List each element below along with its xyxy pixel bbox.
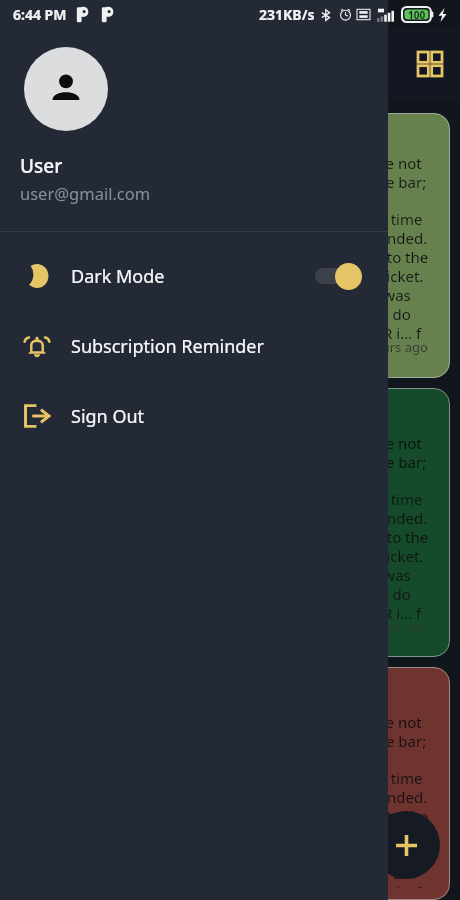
button[interactable]: This is a sample not note with a side ba… <box>10 113 225 378</box>
staticText: 100 <box>408 8 426 22</box>
staticText: It was over the time the season is ended… <box>283 489 429 624</box>
staticText: 3 hours ago <box>355 338 428 356</box>
staticText: 6:44 PM <box>13 5 67 24</box>
button[interactable]: Grid view <box>406 40 454 88</box>
staticText: Personal <box>58 193 104 208</box>
staticText: 231KB/s <box>259 5 315 24</box>
staticText: Subscription Reminder <box>71 334 264 359</box>
staticText: User <box>20 153 63 179</box>
button[interactable]: This is a sample not note with a side ba… <box>235 388 450 657</box>
staticText: It was over the time the season is ended… <box>283 768 429 888</box>
staticText: This is a sample not note with a side ba… <box>283 433 427 473</box>
button[interactable]: This is a sample not note with a side ba… <box>10 388 225 657</box>
staticText: This is a sample not note with a side ba… <box>283 712 427 752</box>
button[interactable]: Add note <box>372 811 440 879</box>
staticText: 3 hours ago <box>130 338 203 356</box>
staticText: Sign Out <box>71 404 145 429</box>
button[interactable]: This is a sample not note with a side ba… <box>235 667 450 900</box>
staticText: This is a sample not note with a side ba… <box>58 153 202 193</box>
staticText: It was over the time the season is ended… <box>283 209 429 344</box>
staticText: 2 days ago <box>362 618 428 636</box>
staticText: It was over the time the season is ended… <box>58 209 204 344</box>
staticText: Dark Mode <box>71 264 165 289</box>
button[interactable]: This is a sample not note with a side ba… <box>235 113 450 378</box>
button[interactable]: Dark Mode <box>0 241 388 311</box>
staticText: This is a sample not note with a side ba… <box>283 153 427 193</box>
staticText: user@gmail.com <box>20 182 151 204</box>
button[interactable]: Sign Out <box>0 381 388 451</box>
button[interactable]: Subscription Reminder <box>0 311 388 381</box>
